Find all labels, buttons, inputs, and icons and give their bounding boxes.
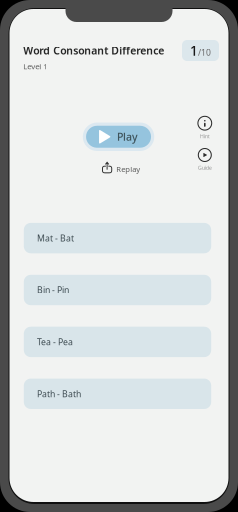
button[interactable]: Tea - Pea (24, 327, 211, 357)
staticText: Guide (198, 164, 212, 171)
button[interactable]: 1 (182, 40, 219, 61)
staticText: Bin - Pin (37, 284, 69, 296)
button[interactable]: Path - Bath (24, 379, 211, 409)
staticText: Replay (116, 164, 140, 174)
staticText: 1 (190, 41, 198, 60)
button[interactable]: Replay (102, 163, 140, 174)
staticText: Play (117, 130, 138, 144)
button[interactable]: Mat - Bat (24, 223, 211, 253)
button[interactable]: Play (83, 122, 154, 151)
staticText: Tea - Pea (37, 336, 73, 348)
button[interactable]: Hint (191, 116, 219, 140)
button[interactable]: Guide (191, 148, 219, 171)
staticText: Word Consonant Difference (23, 43, 164, 58)
staticText: Level 1 (23, 61, 48, 72)
button[interactable]: Bin - Pin (24, 275, 211, 305)
staticText: /10 (198, 47, 211, 58)
staticText: Hint (200, 132, 210, 140)
staticText: Path - Bath (37, 388, 81, 400)
staticText: Mat - Bat (37, 232, 74, 244)
